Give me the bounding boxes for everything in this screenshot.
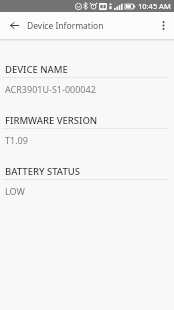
button[interactable]: Navigate up bbox=[0, 12, 25, 37]
staticText: BATTERY STATUS bbox=[5, 165, 80, 178]
button[interactable]: FIRMWARE VERSION bbox=[0, 114, 174, 161]
staticText: LOW bbox=[5, 185, 25, 197]
staticText: DEVICE NAME bbox=[5, 63, 68, 76]
staticText: ACR3901U-S1-000042 bbox=[5, 83, 96, 95]
staticText: 10:45 AM bbox=[138, 1, 171, 11]
button[interactable]: More options bbox=[152, 14, 174, 36]
staticText: T1.09 bbox=[5, 134, 28, 146]
staticText: FIRMWARE VERSION bbox=[5, 114, 98, 127]
button[interactable]: BATTERY STATUS bbox=[0, 165, 174, 212]
button[interactable]: DEVICE NAME bbox=[0, 63, 174, 110]
staticText: Device Information bbox=[27, 20, 104, 32]
